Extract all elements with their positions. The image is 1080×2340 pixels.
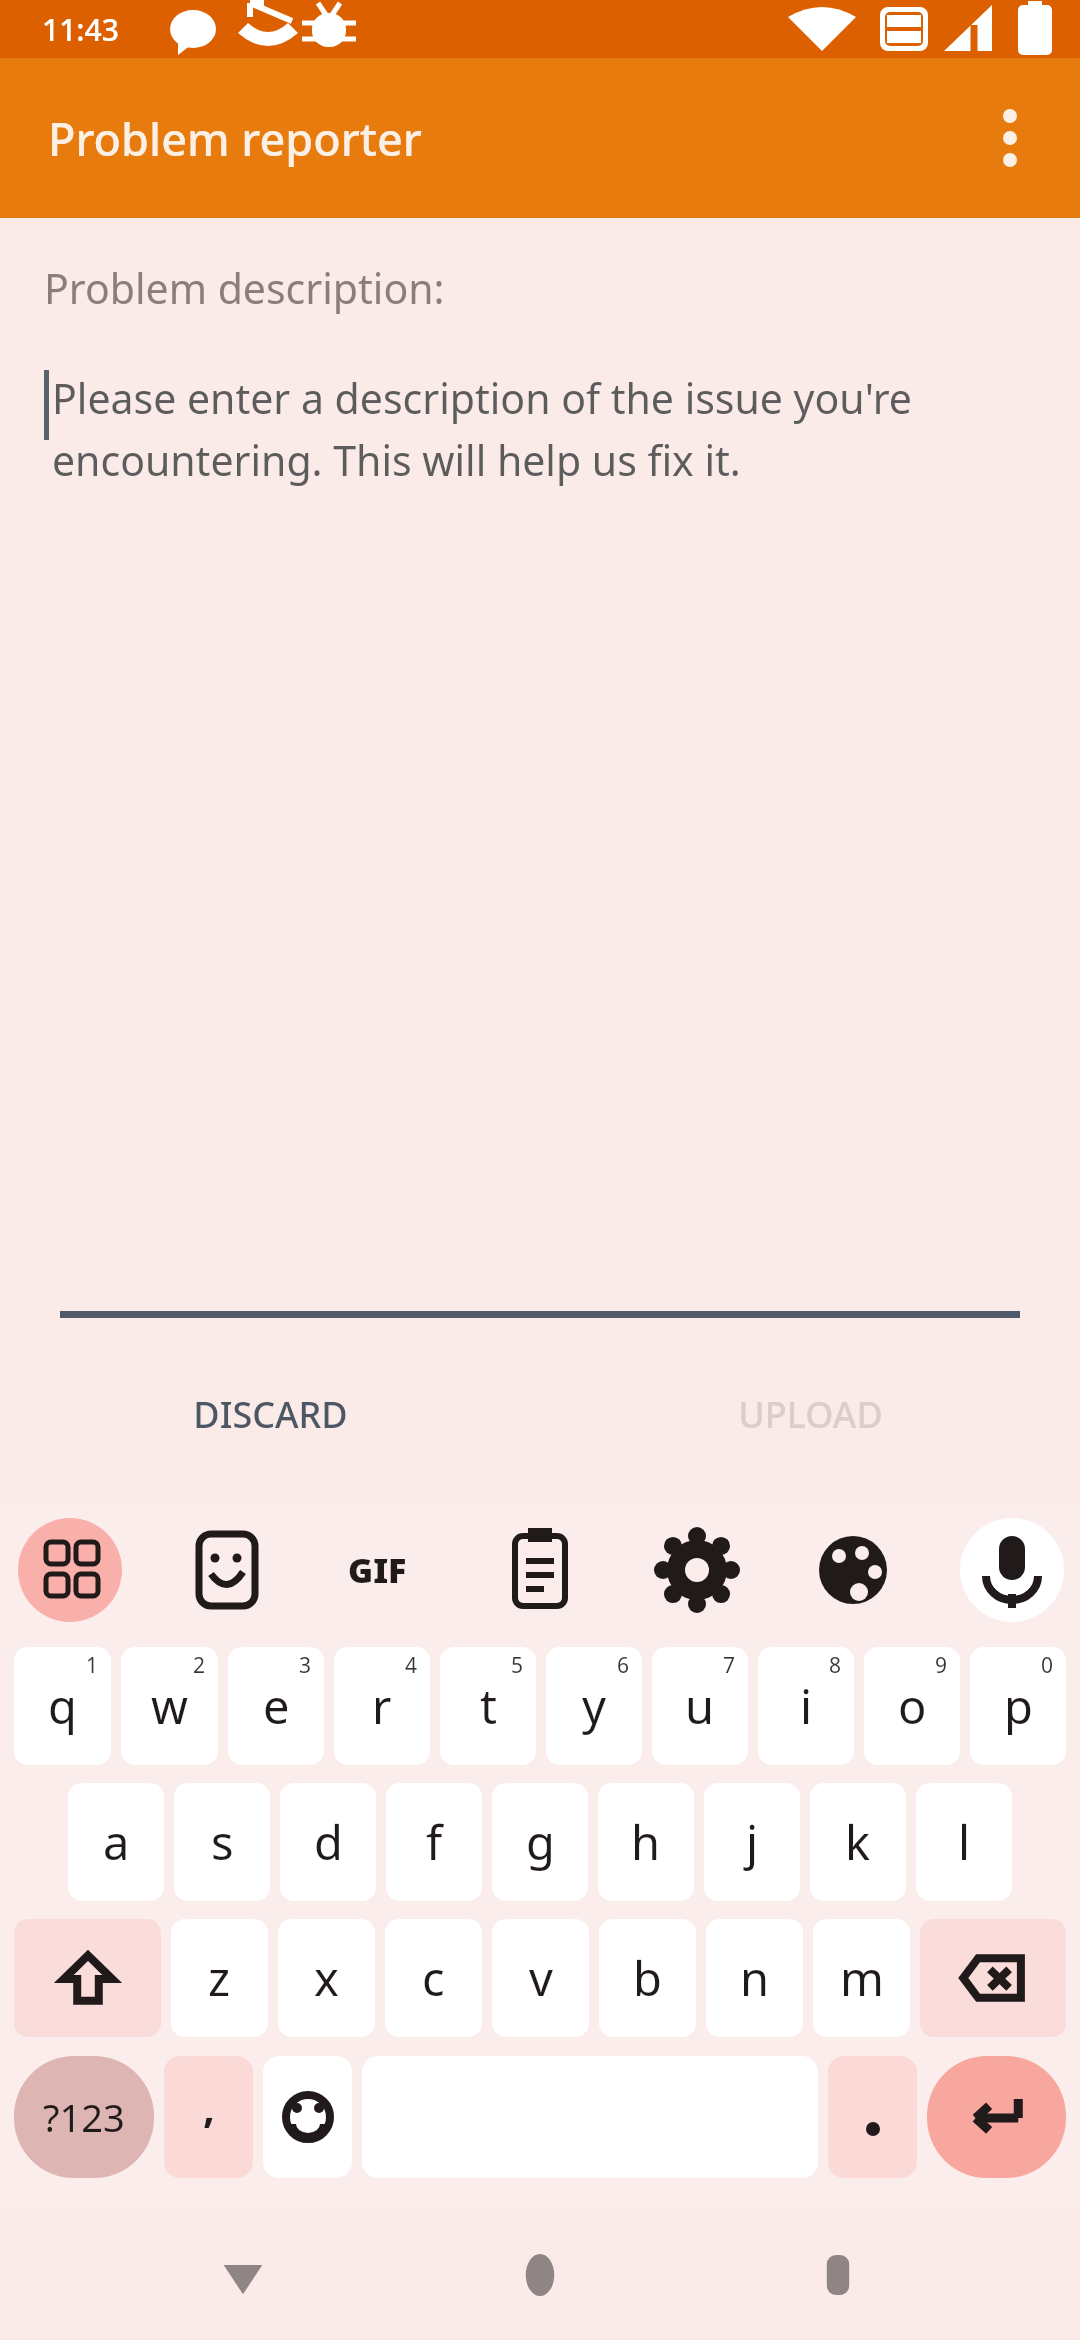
button[interactable]: GIF: [310, 1502, 464, 1638]
staticText: b: [633, 1946, 662, 2010]
button[interactable]: UPLOAD: [540, 1366, 1080, 1462]
button[interactable]: Enter: [927, 2056, 1066, 2178]
button[interactable]: Clipboard: [464, 1502, 618, 1638]
staticText: 8: [829, 1651, 842, 1680]
button[interactable]: Home: [485, 2220, 595, 2330]
staticText: d: [314, 1810, 343, 1874]
staticText: DISCARD: [193, 1390, 348, 1439]
button[interactable]: j: [704, 1783, 800, 1901]
button[interactable]: s: [174, 1783, 270, 1901]
button[interactable]: Recents: [783, 2220, 893, 2330]
button[interactable]: m: [813, 1919, 910, 2037]
button[interactable]: Shift: [14, 1919, 161, 2037]
staticText: w: [151, 1674, 188, 1738]
button[interactable]: Comma: [164, 2056, 253, 2178]
staticText: v: [529, 1946, 553, 2010]
button[interactable]: Stickers: [155, 1502, 310, 1638]
button[interactable]: y: [546, 1647, 642, 1765]
button[interactable]: r: [334, 1647, 430, 1765]
staticText: l: [958, 1810, 971, 1874]
staticText: p: [1004, 1674, 1033, 1738]
button[interactable]: w: [121, 1647, 218, 1765]
button[interactable]: x: [278, 1919, 375, 2037]
staticText: y: [582, 1674, 606, 1738]
staticText: e: [263, 1674, 290, 1738]
button[interactable]: o: [864, 1647, 960, 1765]
staticText: i: [800, 1674, 813, 1738]
staticText: Problem reporter: [48, 108, 422, 169]
staticText: m: [840, 1946, 884, 2010]
staticText: s: [211, 1810, 234, 1874]
staticText: x: [314, 1946, 339, 2010]
staticText: ,: [203, 2078, 215, 2135]
staticText: q: [48, 1674, 77, 1738]
staticText: 9: [935, 1651, 948, 1680]
button[interactable]: z: [171, 1919, 268, 2037]
staticText: r: [372, 1674, 392, 1738]
button[interactable]: Settings: [618, 1502, 772, 1638]
button[interactable]: b: [599, 1919, 696, 2037]
staticText: 1: [86, 1651, 99, 1680]
staticText: GIF: [348, 1547, 407, 1593]
button[interactable]: d: [280, 1783, 376, 1901]
staticText: UPLOAD: [738, 1390, 883, 1439]
button[interactable]: Emoji: [263, 2056, 352, 2178]
button[interactable]: p: [970, 1647, 1066, 1765]
staticText: 0: [1041, 1651, 1054, 1680]
button[interactable]: More options: [968, 96, 1052, 180]
staticText: 2: [193, 1651, 206, 1680]
staticText: ?123: [43, 2091, 125, 2143]
button[interactable]: c: [385, 1919, 482, 2037]
button[interactable]: g: [492, 1783, 588, 1901]
staticText: Please enter a description of the issue …: [52, 370, 1040, 488]
button[interactable]: DISCARD: [0, 1366, 540, 1462]
button[interactable]: t: [440, 1647, 536, 1765]
button[interactable]: a: [68, 1783, 164, 1901]
staticText: j: [746, 1810, 759, 1874]
staticText: n: [740, 1946, 770, 2010]
staticText: 4: [405, 1651, 418, 1680]
staticText: h: [631, 1810, 661, 1874]
staticText: g: [526, 1810, 555, 1874]
button[interactable]: Period: [828, 2056, 917, 2178]
staticText: u: [685, 1674, 715, 1738]
staticText: k: [845, 1810, 871, 1874]
staticText: 6: [617, 1651, 630, 1680]
button[interactable]: ?123: [14, 2056, 154, 2178]
staticText: f: [426, 1810, 443, 1874]
staticText: t: [480, 1674, 497, 1738]
button[interactable]: Themes: [772, 1502, 926, 1638]
button[interactable]: Emoji grid: [0, 1502, 155, 1638]
button[interactable]: Voice input: [926, 1502, 1080, 1638]
staticText: Problem description:: [44, 260, 445, 316]
staticText: 3: [299, 1651, 312, 1680]
staticText: 5: [511, 1651, 524, 1680]
button[interactable]: h: [598, 1783, 694, 1901]
button[interactable]: v: [492, 1919, 589, 2037]
staticText: o: [898, 1674, 927, 1738]
button[interactable]: k: [810, 1783, 906, 1901]
staticText: a: [103, 1810, 130, 1874]
staticText: 7: [723, 1651, 736, 1680]
staticText: z: [208, 1946, 231, 2010]
staticText: c: [422, 1946, 445, 2010]
button[interactable]: n: [706, 1919, 803, 2037]
button[interactable]: Hide keyboard: [188, 2220, 298, 2330]
button[interactable]: f: [386, 1783, 482, 1901]
button[interactable]: e: [228, 1647, 324, 1765]
button[interactable]: i: [758, 1647, 854, 1765]
button[interactable]: u: [652, 1647, 748, 1765]
button[interactable]: Backspace: [920, 1919, 1066, 2037]
staticText: 11:43: [42, 9, 119, 50]
button[interactable]: l: [916, 1783, 1012, 1901]
button[interactable]: q: [14, 1647, 111, 1765]
